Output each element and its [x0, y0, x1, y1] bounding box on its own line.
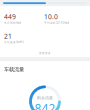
- staticText: 剩余流量: [37, 95, 53, 100]
- staticText: 10.0: [44, 12, 58, 21]
- staticText: 21: [4, 32, 12, 40]
- staticText: 本月里程(km): [4, 21, 21, 25]
- button[interactable]: 查看更多: [39, 51, 51, 55]
- staticText: 449: [4, 12, 16, 21]
- staticText: 车载流量: [4, 66, 24, 73]
- staticText: 查看更多: [39, 51, 51, 55]
- staticText: 平均油耗(L/100km): [44, 21, 69, 25]
- staticText: 平均速度(km/h): [4, 40, 24, 44]
- staticText: 842: [34, 100, 55, 110]
